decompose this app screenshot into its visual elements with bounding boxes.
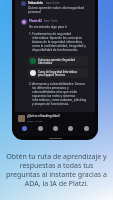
staticText: 1. Fundamentos de seguridad informática:… (29, 32, 86, 52)
staticText: Platzi · 12 min (27, 119, 43, 122)
staticText: Obtén tu ruta de aprendizaje y respuesta… (0, 152, 113, 188)
staticText: ¿Qué es el hacking ético? (27, 114, 60, 118)
staticText: 2. Amenazas y vulnerabilidades: Conoce l… (29, 82, 87, 106)
button[interactable]: ¿Qué es el hacking ético? (18, 114, 92, 122)
staticText: Sebastián (28, 1, 44, 5)
staticText: hace 1 min (44, 19, 58, 23)
button[interactable]: Videos (80, 124, 92, 136)
button[interactable]: Guía para aprender Seguridad Informática (28, 56, 88, 66)
staticText: Platzi AI (29, 19, 42, 23)
button[interactable]: Routes (49, 124, 61, 136)
staticText: Guía para aprender Seguridad Informática (38, 58, 75, 64)
button[interactable]: Downloads (64, 124, 76, 136)
staticText: He encontrado algo para ti (29, 25, 67, 29)
button[interactable]: Search (34, 124, 46, 136)
staticText: Quiero aprender sobre ciberseguridad per… (28, 6, 84, 14)
button[interactable]: Curso de Seguridad Informática para Equi… (28, 68, 88, 78)
staticText: Curso de Seguridad Informática para Equi… (38, 70, 77, 76)
staticText: hace 2 min (46, 1, 60, 5)
button[interactable]: Home (18, 124, 30, 136)
